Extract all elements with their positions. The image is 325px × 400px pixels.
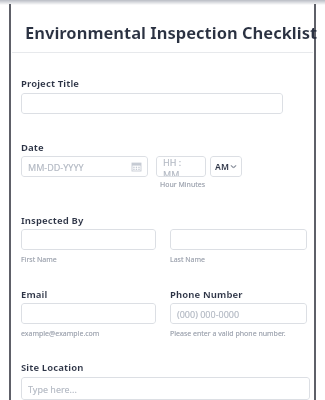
button[interactable]: Site Location	[21, 377, 310, 400]
staticText: AM	[215, 161, 229, 173]
staticText: Site Location	[21, 361, 84, 374]
staticText: Inspected By	[21, 214, 84, 227]
staticText: Please enter a valid phone number.	[170, 329, 286, 339]
button[interactable]: Phone Number	[170, 303, 307, 324]
staticText: First Name	[21, 255, 57, 265]
staticText: Type here...	[28, 383, 303, 395]
staticText: example@example.com	[21, 329, 100, 339]
button[interactable]: AM	[210, 156, 242, 177]
staticText: Last Name	[170, 255, 206, 265]
staticText: Email	[21, 288, 48, 301]
staticText: HH : MM	[163, 156, 199, 177]
staticText: Phone Number	[170, 288, 243, 301]
button[interactable]: Last Name	[170, 229, 307, 250]
staticText: (000) 000-0000	[177, 308, 300, 320]
staticText: Hour Minutes	[160, 180, 206, 190]
staticText: Date	[21, 141, 44, 154]
staticText: Project Title	[21, 77, 80, 90]
button[interactable]: Project Title	[21, 93, 283, 114]
button[interactable]: Time	[156, 156, 206, 177]
staticText: MM-DD-YYYY	[28, 161, 132, 173]
staticText: Environmental Inspection Checklist	[25, 21, 318, 43]
button[interactable]: Date	[21, 156, 148, 177]
button[interactable]: Email	[21, 303, 156, 324]
button[interactable]: First Name	[21, 229, 156, 250]
